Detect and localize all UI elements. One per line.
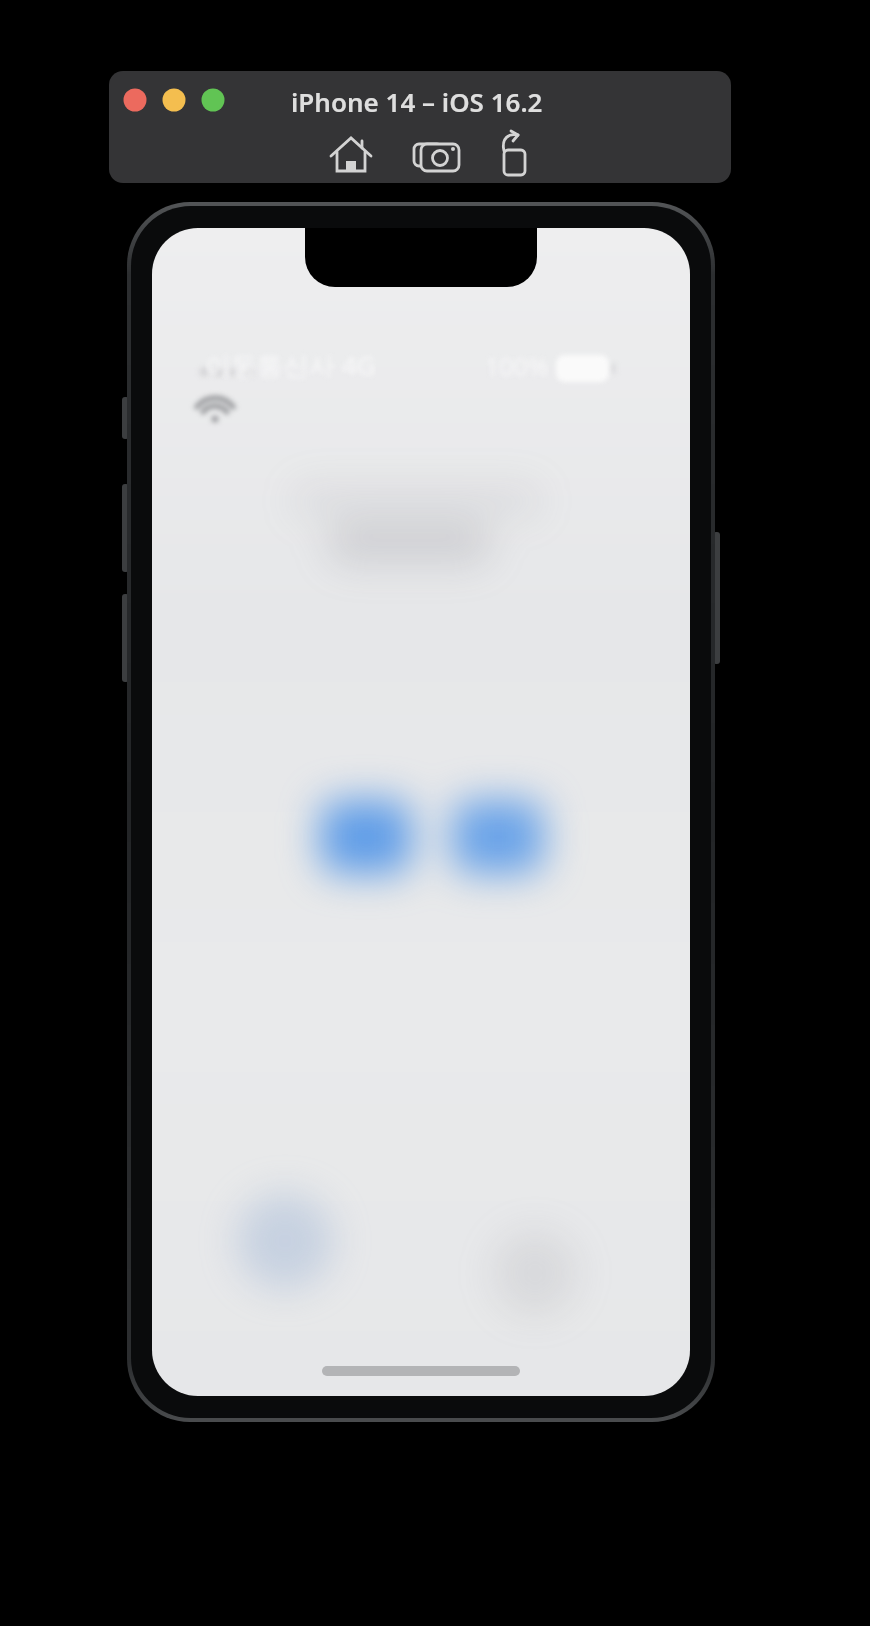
button[interactable]: Home (324, 127, 380, 183)
button[interactable]: Rotate (487, 127, 543, 183)
button[interactable]: Screenshot (409, 127, 465, 183)
staticText: iPhone 14 – iOS 16.2 (291, 84, 543, 119)
